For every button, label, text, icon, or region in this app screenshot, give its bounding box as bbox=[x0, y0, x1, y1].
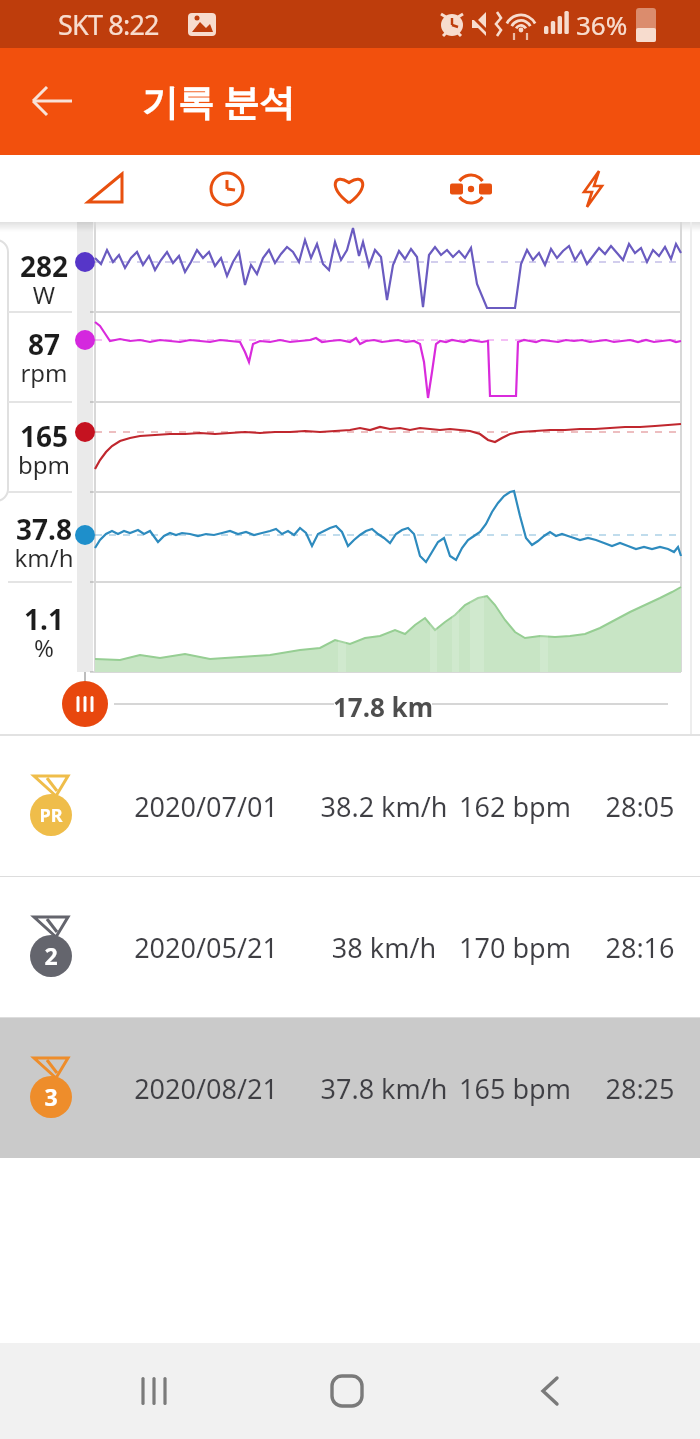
staticText: 28:25 bbox=[530, 1070, 700, 1107]
staticText: 87 bbox=[0, 325, 88, 363]
staticText: 2020/07/01 bbox=[96, 788, 316, 825]
staticText: 2020/05/21 bbox=[96, 929, 316, 966]
button[interactable] bbox=[114, 1351, 194, 1431]
button[interactable] bbox=[62, 681, 108, 727]
button[interactable] bbox=[506, 1351, 586, 1431]
staticText: bpm bbox=[0, 448, 88, 481]
staticText: 162 bpm bbox=[405, 788, 625, 825]
staticText: SKT 8:22 bbox=[58, 6, 159, 43]
staticText: PR bbox=[24, 803, 78, 828]
staticText: 165 bbox=[0, 417, 88, 455]
button[interactable] bbox=[288, 155, 410, 222]
staticText: 38.2 km/h bbox=[274, 788, 494, 825]
button[interactable] bbox=[532, 155, 654, 222]
staticText: 36% bbox=[576, 7, 628, 42]
staticText: 282 bbox=[0, 247, 88, 285]
button[interactable]: 3 bbox=[0, 1018, 700, 1158]
staticText: 37.8 km/h bbox=[274, 1070, 494, 1107]
button[interactable]: 2 bbox=[0, 877, 700, 1017]
staticText: 1.1 bbox=[0, 600, 88, 638]
button[interactable] bbox=[20, 73, 84, 129]
staticText: 165 bpm bbox=[405, 1070, 625, 1107]
staticText: km/h bbox=[0, 541, 88, 574]
button[interactable] bbox=[44, 155, 166, 222]
staticText: 17.8 km bbox=[303, 689, 463, 724]
staticText: 3 bbox=[24, 1081, 78, 1112]
button[interactable] bbox=[307, 1351, 387, 1431]
staticText: 기록 분석 bbox=[142, 77, 296, 126]
staticText: 28:16 bbox=[530, 929, 700, 966]
staticText: % bbox=[0, 631, 88, 664]
button[interactable]: PR bbox=[0, 736, 700, 876]
staticText: 38 km/h bbox=[274, 929, 494, 966]
button[interactable] bbox=[410, 155, 532, 222]
staticText: 170 bpm bbox=[405, 929, 625, 966]
button[interactable] bbox=[166, 155, 288, 222]
staticText: 37.8 bbox=[0, 510, 88, 548]
staticText: W bbox=[0, 278, 88, 311]
staticText: 28:05 bbox=[530, 788, 700, 825]
staticText: 2 bbox=[24, 940, 78, 971]
staticText: rpm bbox=[0, 356, 88, 389]
staticText: 2020/08/21 bbox=[96, 1070, 316, 1107]
